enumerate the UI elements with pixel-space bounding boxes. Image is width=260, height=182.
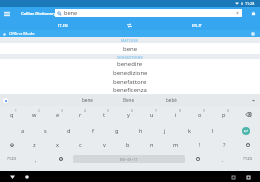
button[interactable]: c [69, 138, 92, 152]
button[interactable]: 9 [188, 106, 212, 123]
button[interactable]: ?123 [235, 152, 260, 166]
staticText: h [139, 127, 143, 135]
staticText: n [150, 141, 154, 149]
button[interactable]: EN-IT [163, 20, 230, 30]
button[interactable]: g [105, 123, 129, 138]
staticText: 0 [227, 109, 229, 113]
button[interactable]: 6 [116, 106, 140, 123]
button[interactable]: benefattore [0, 77, 260, 86]
button[interactable]: ? [212, 138, 236, 152]
button[interactable]: l [201, 123, 225, 138]
button[interactable]: a [11, 123, 34, 138]
button[interactable]: 4 [69, 106, 92, 123]
staticText: benedizione [113, 69, 148, 77]
staticText: Bene [123, 97, 135, 103]
button[interactable]: 1 [0, 106, 23, 123]
button[interactable]: x [46, 138, 69, 152]
staticText: 7 [155, 109, 157, 113]
button[interactable]: Emoji [236, 138, 260, 152]
button[interactable]: Screenshot [228, 172, 238, 182]
button[interactable]: bene [0, 43, 260, 54]
staticText: m [173, 141, 179, 149]
staticText: . [222, 156, 224, 163]
button[interactable]: Offline Mode [3, 31, 35, 37]
button[interactable]: k [177, 123, 201, 138]
staticText: EN • ES • IT [120, 157, 138, 162]
staticText: v [103, 141, 106, 149]
button[interactable]: 3 [46, 106, 69, 123]
button[interactable]: s [34, 123, 57, 138]
staticText: 11:28 [245, 1, 255, 6]
button[interactable]: j [153, 123, 177, 138]
staticText: 6 [131, 109, 133, 113]
button[interactable]: b [116, 138, 140, 152]
staticText: ! [199, 141, 201, 149]
button[interactable]: Shift [0, 138, 23, 152]
button[interactable]: IT-EN [29, 20, 96, 30]
button[interactable]: 0 [212, 106, 236, 123]
staticText: Collins Dictionary [21, 11, 56, 16]
staticText: d [67, 127, 71, 135]
button[interactable]: f [81, 123, 105, 138]
button[interactable]: v [92, 138, 116, 152]
button[interactable]: Recent apps [243, 172, 253, 182]
button[interactable]: z [23, 138, 46, 152]
staticText: ? [223, 141, 226, 149]
button[interactable]: Home [22, 172, 32, 182]
button[interactable]: 7 [140, 106, 164, 123]
staticText: IT-EN [58, 23, 68, 28]
staticText: j [164, 127, 166, 135]
staticText: ?123 [7, 156, 17, 162]
button[interactable]: Google [3, 98, 8, 103]
staticText: l [212, 127, 214, 135]
staticText: bene [82, 97, 93, 103]
button[interactable]: Emoji keyboard [185, 152, 210, 166]
staticText: i [175, 111, 177, 119]
staticText: bene [123, 45, 138, 53]
button[interactable]: 2 [23, 106, 46, 123]
button[interactable]: Search [232, 123, 260, 138]
staticText: bene [64, 9, 78, 17]
staticText: bebè [166, 97, 177, 103]
button[interactable]: bene [55, 9, 242, 17]
staticText: c [79, 141, 82, 149]
button[interactable]: bebè [150, 94, 192, 106]
button[interactable]: bene [67, 94, 108, 106]
button[interactable]: Lock [246, 7, 260, 20]
button[interactable]: Back [7, 172, 17, 182]
staticText: o [198, 111, 202, 119]
staticText: t [103, 111, 106, 119]
button[interactable]: Backspace [236, 106, 260, 123]
button[interactable]: benedizione [0, 68, 260, 77]
button[interactable]: h [129, 123, 153, 138]
button[interactable]: n [140, 138, 164, 152]
button[interactable]: m [164, 138, 188, 152]
button[interactable]: beneficenza [0, 86, 260, 94]
button[interactable]: d [57, 123, 81, 138]
button[interactable]: Open navigation drawer [0, 7, 14, 20]
staticText: Offline Mode [9, 31, 35, 37]
button[interactable]: Swap languages [96, 20, 163, 30]
button[interactable]: Change keyboard language [48, 152, 73, 166]
button[interactable]: ! [188, 138, 212, 152]
staticText: beneficenza [113, 86, 147, 94]
staticText: x [56, 141, 59, 149]
staticText: p [222, 111, 226, 119]
button[interactable]: Bene [108, 94, 150, 106]
button[interactable]: 8 [164, 106, 188, 123]
staticText: 8 [179, 109, 181, 113]
button[interactable]: , [24, 152, 48, 166]
button[interactable]: More suggestions [250, 97, 256, 103]
staticText: r [79, 111, 82, 119]
staticText: SUGGESTIONS [117, 55, 143, 59]
button[interactable]: Status [251, 32, 255, 36]
button[interactable]: ?123 [0, 152, 24, 166]
staticText: 9 [203, 109, 205, 113]
button[interactable]: Space [73, 155, 185, 163]
staticText: z [33, 141, 36, 149]
button[interactable]: 5 [92, 106, 116, 123]
staticText: w [32, 111, 37, 119]
button[interactable]: benedire [0, 59, 260, 68]
staticText: 2 [38, 109, 40, 113]
